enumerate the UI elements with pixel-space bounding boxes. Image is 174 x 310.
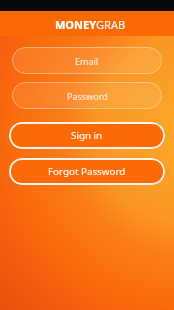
button[interactable]: Sign in [9,122,165,149]
staticText: Sign in [71,129,103,142]
button[interactable]: Forgot Password [9,158,165,185]
staticText: MONEYGRAB [55,17,126,32]
staticText: Password [67,90,108,102]
staticText: Forgot Password [48,165,126,178]
button[interactable]: Password [12,82,162,109]
staticText: Email [75,55,99,67]
button[interactable]: Email [12,47,162,74]
